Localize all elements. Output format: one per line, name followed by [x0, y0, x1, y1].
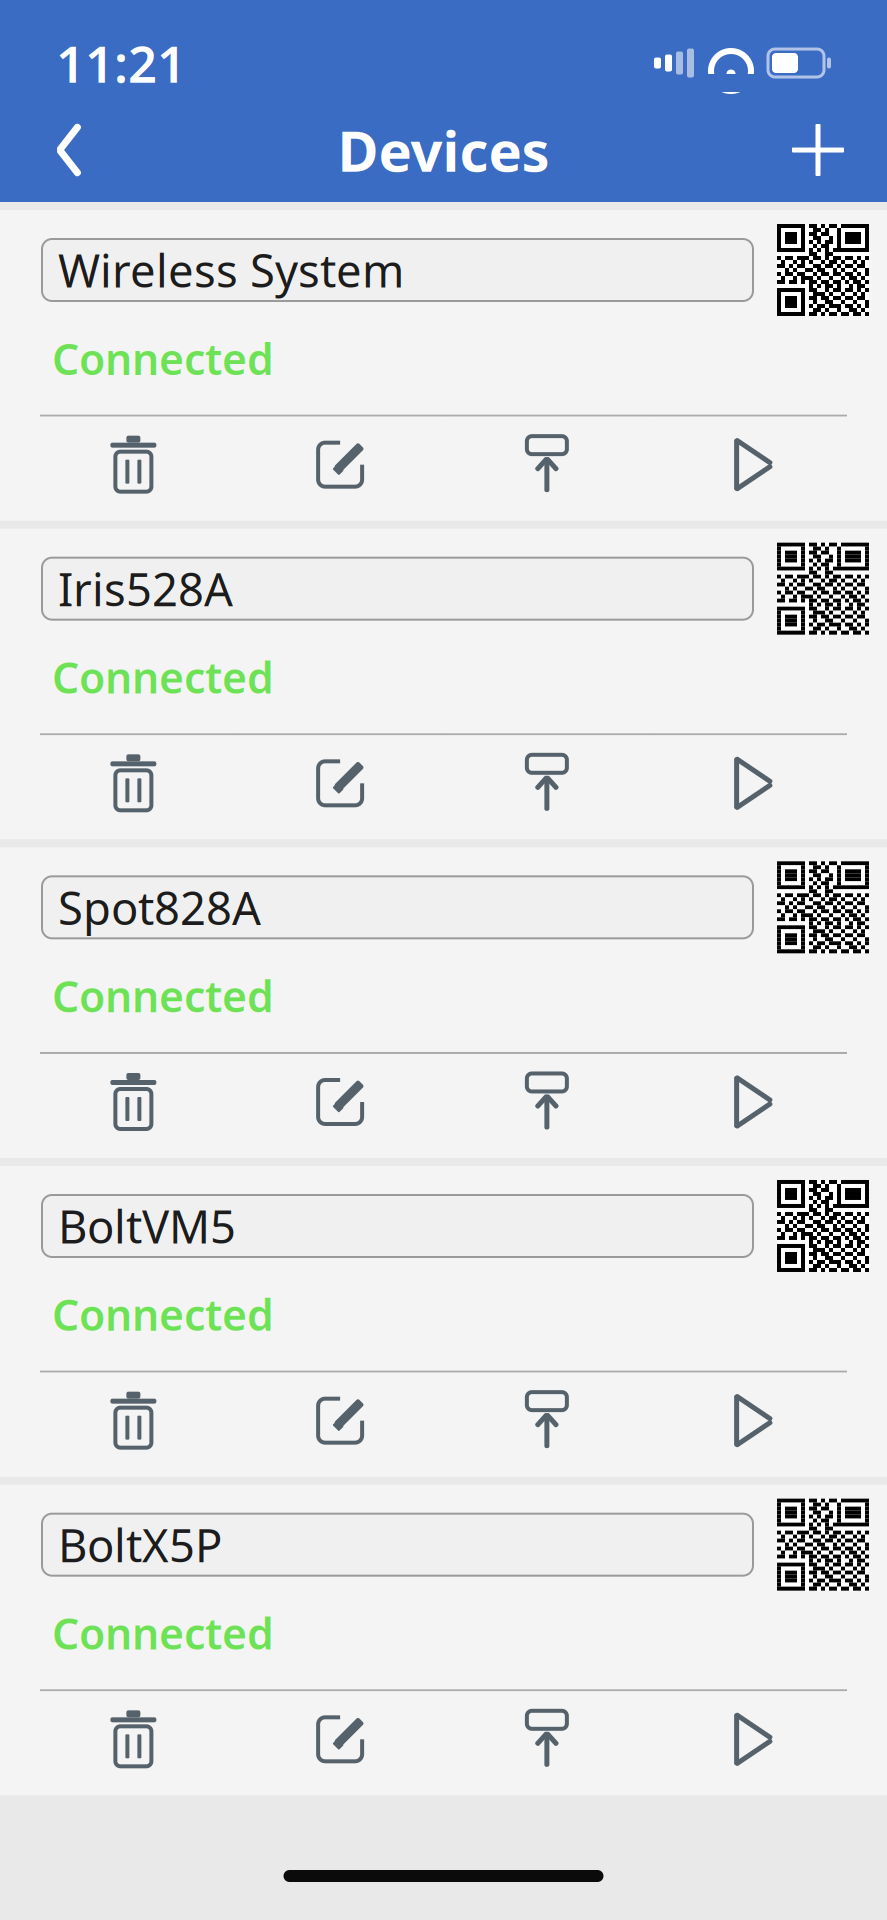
staticText: Spot828A	[58, 877, 261, 937]
button[interactable]: Edit	[237, 1373, 444, 1469]
button[interactable]: Play	[650, 1054, 857, 1150]
button[interactable]: Play	[650, 1373, 857, 1469]
button[interactable]: QR code	[789, 236, 857, 304]
button[interactable]: Delete	[30, 735, 237, 831]
button[interactable]: Edit	[237, 1054, 444, 1150]
button[interactable]: QR code	[789, 873, 857, 941]
button[interactable]: Iris528A	[42, 558, 753, 620]
button[interactable]: Upload	[443, 735, 650, 831]
staticText: Connected	[52, 649, 274, 705]
button[interactable]: QR code	[789, 1192, 857, 1260]
button[interactable]: Delete	[30, 1691, 237, 1787]
button[interactable]: Edit	[237, 735, 444, 831]
staticText: 11:21	[56, 29, 186, 97]
button[interactable]: Spot828A	[42, 876, 753, 938]
button[interactable]: BoltX5P	[42, 1514, 753, 1576]
staticText: BoltVM5	[58, 1196, 236, 1256]
button[interactable]: Add device	[773, 110, 863, 190]
button[interactable]: Delete	[30, 1054, 237, 1150]
button[interactable]: Upload	[443, 1054, 650, 1150]
button[interactable]: Play	[650, 1691, 857, 1787]
staticText: Connected	[52, 1605, 274, 1661]
button[interactable]: Delete	[30, 1373, 237, 1469]
staticText: Connected	[52, 967, 274, 1024]
button[interactable]: Upload	[443, 1373, 650, 1469]
staticText: Connected	[52, 1286, 274, 1343]
staticText: Iris528A	[58, 559, 233, 619]
button[interactable]: QR code	[789, 1511, 857, 1579]
staticText: Devices	[337, 113, 549, 187]
button[interactable]: Edit	[237, 417, 444, 513]
button[interactable]: QR code	[789, 555, 857, 623]
button[interactable]: Upload	[443, 1691, 650, 1787]
button[interactable]: Wireless System	[42, 239, 753, 301]
staticText: BoltX5P	[58, 1514, 222, 1575]
staticText: Connected	[52, 330, 274, 387]
button[interactable]: BoltVM5	[42, 1195, 753, 1257]
button[interactable]: Edit	[237, 1691, 444, 1787]
button[interactable]: Upload	[443, 417, 650, 513]
button[interactable]: Play	[650, 735, 857, 831]
button[interactable]: Back	[24, 110, 114, 190]
staticText: Wireless System	[58, 240, 404, 300]
button[interactable]: Delete	[30, 417, 237, 513]
button[interactable]: Play	[650, 417, 857, 513]
